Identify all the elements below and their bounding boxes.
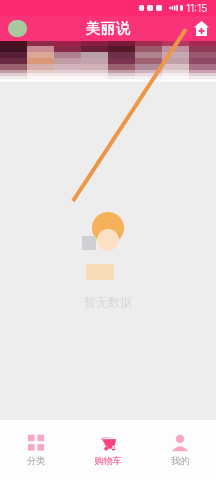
button[interactable]: 我的 [144, 428, 216, 472]
staticText: 我的 [171, 455, 189, 467]
staticText: 11:15 [186, 1, 207, 14]
staticText: 分类 [27, 455, 45, 467]
staticText: 暂无数据 [84, 295, 132, 310]
button[interactable]: Logo [0, 20, 27, 37]
button[interactable]: 分类 [0, 428, 72, 472]
button[interactable]: 购物车 [72, 428, 144, 472]
button[interactable]: Add home [194, 21, 216, 36]
staticText: 购物车 [94, 455, 121, 467]
staticText: 美丽说 [85, 19, 130, 38]
